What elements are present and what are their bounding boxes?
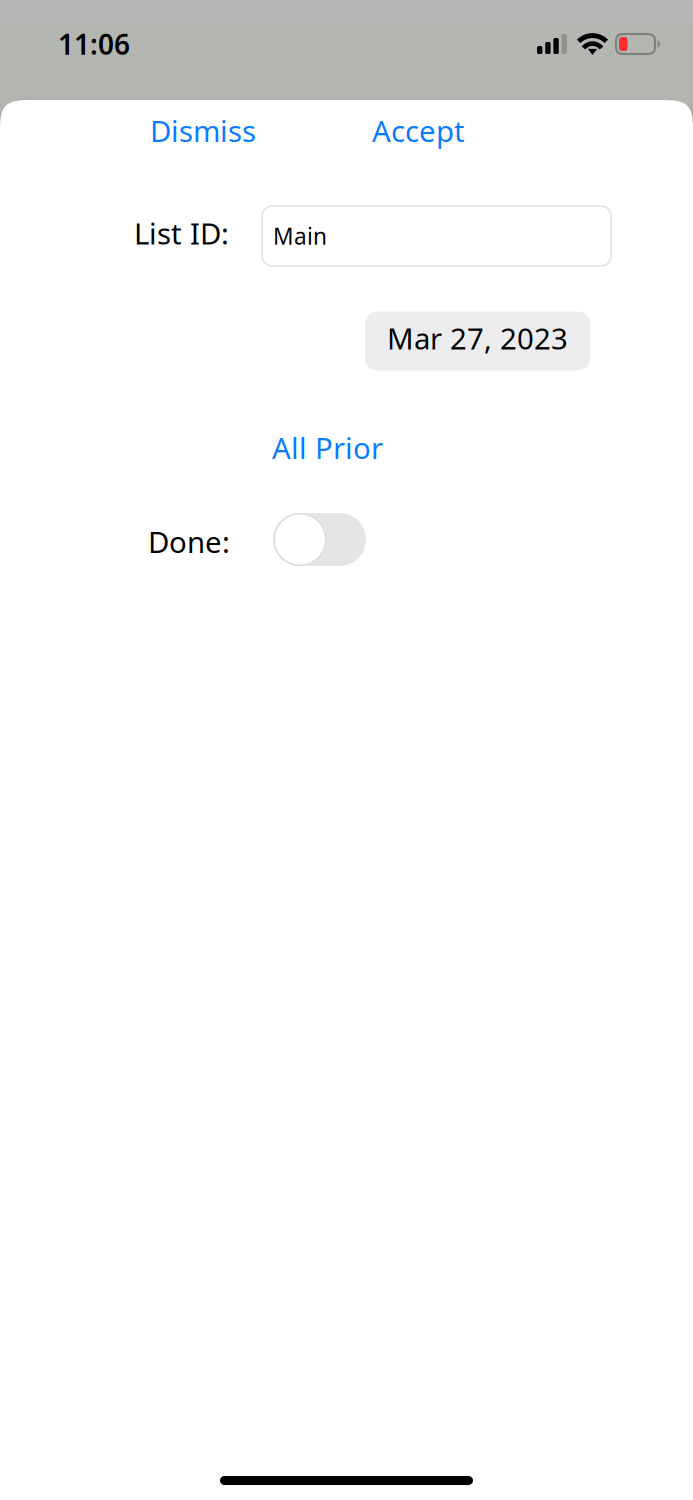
staticText: Done: xyxy=(148,522,230,561)
button[interactable]: Dismiss xyxy=(150,111,256,150)
button[interactable]: Done xyxy=(273,513,366,566)
staticText: Mar 27, 2023 xyxy=(387,318,568,357)
staticText: All Prior xyxy=(272,428,383,467)
staticText: Accept xyxy=(372,111,465,150)
staticText: 11:06 xyxy=(58,25,130,63)
button[interactable]: Accept xyxy=(372,111,465,150)
button[interactable]: Main xyxy=(262,206,611,266)
button[interactable]: All Prior xyxy=(272,428,383,467)
staticText: List ID: xyxy=(134,213,229,252)
button[interactable]: Mar 27, 2023 xyxy=(365,311,590,370)
staticText: Main xyxy=(273,221,327,251)
staticText: Dismiss xyxy=(150,111,256,150)
